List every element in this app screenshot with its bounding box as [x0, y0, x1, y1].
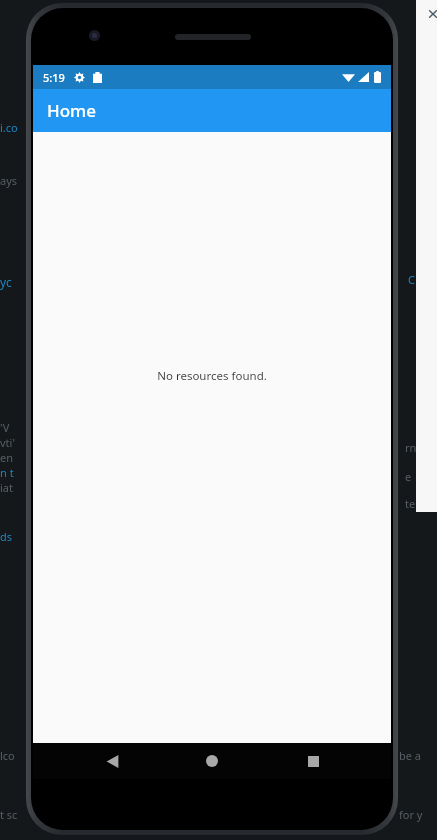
staticText: No resources found. — [157, 368, 267, 384]
staticText: te — [405, 496, 416, 511]
staticText: e — [405, 469, 412, 484]
button[interactable]: Back — [90, 743, 134, 779]
staticText: n t — [0, 465, 14, 480]
staticText: i.co — [0, 120, 18, 135]
button[interactable]: Recent apps — [291, 743, 335, 779]
staticText: 5:19 — [43, 70, 65, 85]
button[interactable]: Home — [190, 743, 234, 779]
staticText: en — [0, 450, 14, 465]
staticText: yc — [0, 274, 12, 290]
staticText: ds — [0, 529, 13, 544]
staticText: for y — [399, 807, 423, 822]
staticText: be a — [399, 748, 421, 763]
staticText: vti' — [0, 435, 15, 450]
staticText: rn — [405, 440, 417, 455]
button[interactable]: Close — [426, 7, 437, 21]
staticText: iat — [0, 480, 13, 495]
staticText: C — [408, 272, 415, 287]
staticText: lco — [0, 748, 15, 763]
staticText: 'V — [0, 420, 10, 435]
staticText: ays — [0, 173, 18, 188]
staticText: t sc — [0, 807, 18, 822]
staticText: Home — [47, 99, 96, 122]
